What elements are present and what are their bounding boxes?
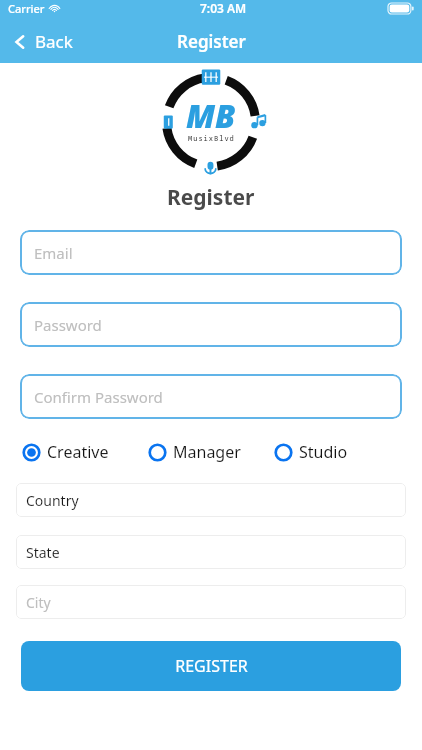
staticText: Creative xyxy=(47,441,109,463)
button[interactable]: State xyxy=(16,535,406,569)
staticText: Register xyxy=(177,30,246,53)
button[interactable]: Password xyxy=(20,302,402,347)
staticText: Carrier xyxy=(8,1,45,16)
staticText: Confirm Password xyxy=(34,387,163,407)
button[interactable]: Country xyxy=(16,483,406,517)
button[interactable]: Back xyxy=(0,24,85,59)
staticText: Studio xyxy=(299,441,348,463)
button[interactable]: REGISTER xyxy=(21,641,401,691)
button[interactable]: Email xyxy=(20,230,402,275)
button[interactable]: Confirm Password xyxy=(20,374,402,419)
button[interactable]: City xyxy=(16,585,406,619)
button[interactable]: Studio xyxy=(274,439,400,465)
staticText: Back xyxy=(35,30,73,53)
staticText: REGISTER xyxy=(175,655,248,677)
staticText: Country xyxy=(26,491,79,510)
button[interactable]: Creative xyxy=(22,439,148,465)
button[interactable]: Manager xyxy=(148,439,274,465)
staticText: State xyxy=(26,543,60,562)
staticText: Email xyxy=(34,243,73,263)
staticText: MB xyxy=(186,94,236,138)
staticText: Manager xyxy=(173,441,241,463)
staticText: Register xyxy=(167,183,255,212)
staticText: City xyxy=(26,593,51,612)
staticText: MusixBlvd xyxy=(188,134,235,144)
staticText: 7:03 AM xyxy=(200,0,247,16)
staticText: Password xyxy=(34,315,102,335)
